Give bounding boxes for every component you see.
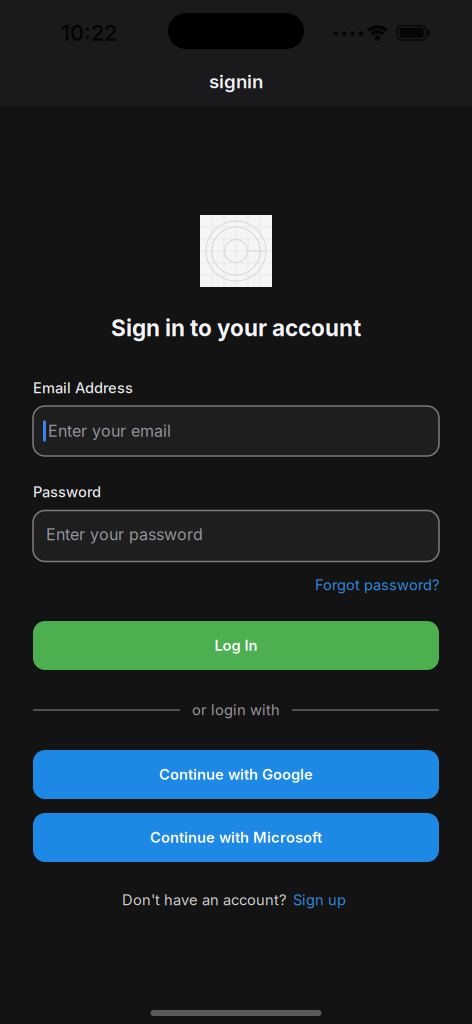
- button[interactable]: Continue with Microsoft: [33, 813, 439, 862]
- button[interactable]: Enter your password: [33, 510, 439, 561]
- staticText: 10:22: [61, 20, 117, 46]
- staticText: Email Address: [33, 379, 133, 397]
- button[interactable]: Enter your email: [33, 406, 439, 456]
- staticText: Sign in to your account: [111, 315, 361, 341]
- staticText: Forgot password?: [315, 576, 439, 594]
- button[interactable]: Continue with Google: [33, 750, 439, 799]
- staticText: Enter your password: [46, 525, 203, 544]
- staticText: Enter your email: [48, 422, 171, 440]
- staticText: Sign up: [293, 891, 346, 909]
- button[interactable]: Forgot password?: [315, 576, 439, 594]
- button[interactable]: Log In: [33, 621, 439, 670]
- staticText: signin: [209, 70, 263, 92]
- button[interactable]: Sign up: [293, 891, 346, 909]
- staticText: Don't have an account?: [122, 891, 286, 909]
- staticText: Continue with Google: [159, 766, 313, 783]
- staticText: or login with: [192, 701, 280, 719]
- staticText: Log In: [214, 637, 257, 654]
- staticText: Password: [33, 483, 101, 501]
- staticText: Continue with Microsoft: [150, 829, 322, 846]
